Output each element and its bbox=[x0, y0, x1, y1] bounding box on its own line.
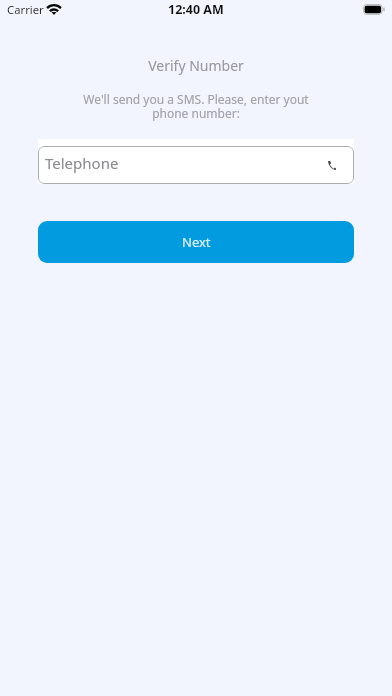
staticText: Verify Number bbox=[0, 56, 392, 75]
staticText: Carrier bbox=[7, 2, 44, 17]
button[interactable]: Next bbox=[38, 221, 354, 263]
staticText: We'll send you a SMS. Please, enter yout… bbox=[0, 91, 392, 121]
staticText: Next bbox=[182, 233, 211, 251]
other: Phone bbox=[326, 160, 336, 170]
button[interactable]: Telephone bbox=[38, 146, 354, 184]
staticText: 12:40 AM bbox=[168, 1, 224, 18]
staticText: Telephone bbox=[45, 153, 119, 173]
other: Battery bbox=[363, 4, 386, 15]
other: Wi-Fi bbox=[46, 4, 62, 15]
